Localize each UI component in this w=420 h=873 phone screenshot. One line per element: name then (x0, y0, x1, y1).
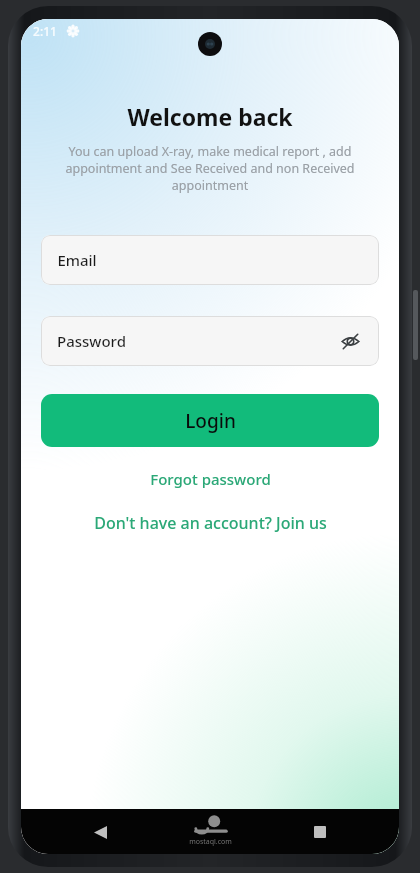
button[interactable]: Password (41, 316, 379, 366)
button[interactable]: Recent apps (303, 815, 337, 849)
staticText: Email (57, 250, 97, 270)
button[interactable]: Show password (337, 328, 363, 354)
button[interactable]: Home (183, 809, 237, 854)
staticText: Password (57, 331, 126, 351)
staticText: Forgot password (150, 469, 271, 489)
staticText: Welcome back (127, 101, 293, 132)
staticText: Login (185, 408, 236, 434)
staticText: 2:11 (33, 23, 57, 39)
button[interactable]: Back (83, 815, 117, 849)
button[interactable]: Email (41, 235, 379, 285)
button[interactable]: Don't have an account? Join us (84, 508, 337, 538)
button[interactable]: Forgot password (140, 465, 281, 493)
staticText: You can upload X-ray, make medical repor… (41, 143, 379, 194)
staticText: mostaql.com (189, 837, 232, 847)
button[interactable]: Login (41, 394, 379, 447)
staticText: Don't have an account? Join us (94, 512, 327, 534)
